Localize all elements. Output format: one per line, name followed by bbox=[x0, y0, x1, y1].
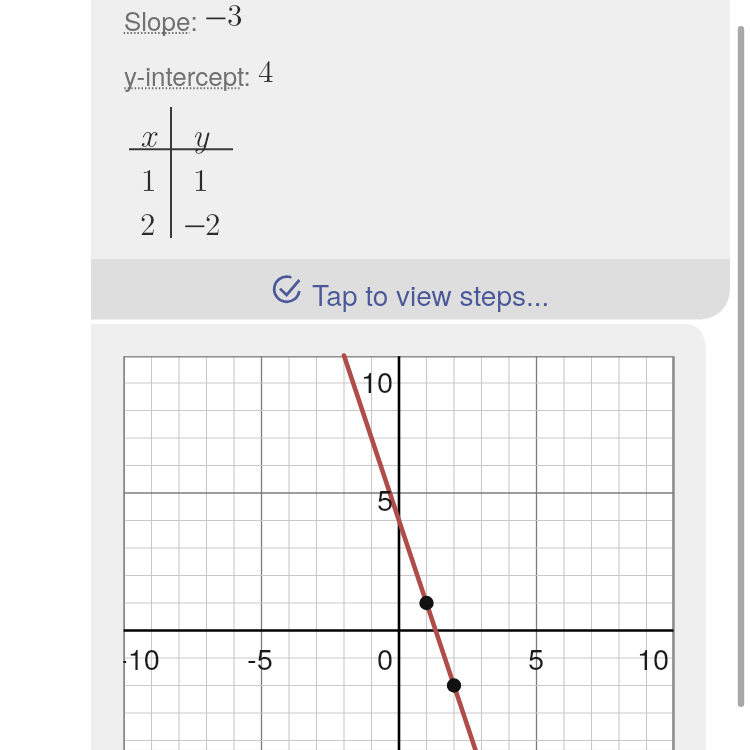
staticText: 5 bbox=[528, 637, 545, 679]
button[interactable]: Tap to view steps... bbox=[91, 259, 730, 320]
staticText: 1 bbox=[193, 156, 209, 200]
staticText: Tap to view steps... bbox=[312, 274, 550, 314]
staticText: 3 bbox=[227, 0, 243, 35]
staticText: 2 bbox=[140, 200, 156, 244]
staticText: 5 bbox=[377, 478, 394, 520]
staticText: Slope: bbox=[124, 1, 198, 38]
staticText: x bbox=[140, 109, 156, 157]
staticText: -5 bbox=[247, 637, 273, 679]
staticText: 10 bbox=[361, 360, 394, 402]
staticText: y-intercept: bbox=[124, 56, 251, 93]
staticText: 4 bbox=[258, 47, 274, 91]
button[interactable]: Graph of y = -3x + 4 bbox=[124, 356, 674, 750]
staticText: 2 bbox=[205, 200, 221, 244]
staticText: 1 bbox=[141, 156, 157, 200]
staticText: y bbox=[192, 109, 209, 157]
staticText: 0 bbox=[377, 637, 394, 679]
staticText: -10 bbox=[118, 637, 160, 679]
staticText: 10 bbox=[637, 637, 670, 679]
